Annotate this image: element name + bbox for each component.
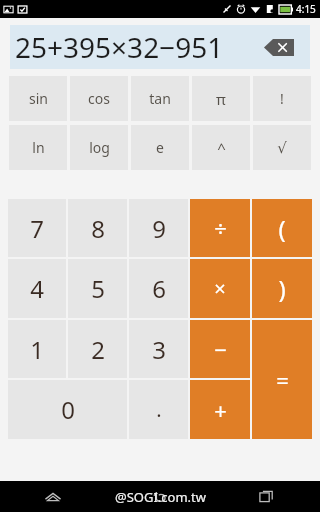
button[interactable]: ln — [9, 125, 67, 170]
staticText: sin — [29, 89, 48, 108]
staticText: 1 — [30, 333, 44, 366]
button[interactable]: 9 — [129, 199, 188, 257]
button[interactable]: = — [252, 320, 312, 439]
staticText: √ — [277, 139, 287, 156]
staticText: ! — [280, 89, 284, 108]
staticText: 3 — [152, 333, 166, 366]
button[interactable]: × — [190, 259, 250, 318]
button[interactable]: Home — [0, 481, 106, 512]
staticText: 5 — [91, 272, 105, 305]
button[interactable]: log — [70, 125, 128, 170]
button[interactable]: Backspace — [264, 39, 294, 56]
staticText: 9 — [152, 212, 166, 245]
staticText: ^ — [217, 138, 226, 158]
button[interactable]: Recents — [213, 481, 320, 512]
staticText: ) — [278, 272, 286, 305]
staticText: . — [156, 396, 162, 423]
staticText: − — [214, 334, 227, 364]
staticText: 6 — [152, 272, 166, 305]
button[interactable]: ! — [253, 76, 311, 121]
button[interactable]: 6 — [129, 259, 188, 318]
button[interactable]: 25+395×32−951 — [10, 25, 310, 69]
button[interactable]: ^ — [192, 125, 250, 170]
button[interactable]: sin — [9, 76, 67, 121]
button[interactable]: 7 — [8, 199, 66, 257]
button[interactable]: 8 — [68, 199, 127, 257]
staticText: cos — [88, 89, 110, 108]
staticText: + — [214, 395, 227, 425]
staticText: 4 — [30, 272, 44, 305]
button[interactable]: 4 — [8, 259, 66, 318]
staticText: 0 — [61, 393, 75, 426]
button[interactable]: ÷ — [190, 199, 250, 257]
staticText: = — [276, 365, 289, 395]
button[interactable]: 3 — [129, 320, 188, 378]
button[interactable]: ( — [252, 199, 312, 257]
button[interactable]: cos — [70, 76, 128, 121]
staticText: ÷ — [214, 213, 227, 243]
button[interactable]: 2 — [68, 320, 127, 378]
staticText: tan — [149, 89, 171, 108]
staticText: ( — [278, 212, 286, 245]
staticText: @SOGI.com.tw — [115, 488, 206, 506]
staticText: × — [214, 275, 226, 302]
button[interactable]: tan — [131, 76, 189, 121]
button[interactable]: e — [131, 125, 189, 170]
staticText: ln — [32, 138, 45, 157]
staticText: 4:15 — [296, 2, 316, 16]
staticText: 2 — [91, 333, 105, 366]
staticText: log — [89, 138, 110, 157]
button[interactable]: 0 — [8, 380, 127, 439]
button[interactable]: 1 — [8, 320, 66, 378]
button[interactable]: ) — [252, 259, 312, 318]
staticText: π — [216, 89, 226, 109]
button[interactable]: π — [192, 76, 250, 121]
button[interactable]: 5 — [68, 259, 127, 318]
staticText: 25+395×32−951 — [15, 28, 224, 66]
button[interactable]: + — [190, 380, 250, 439]
button[interactable]: − — [190, 320, 250, 378]
button[interactable]: . — [129, 380, 188, 439]
button[interactable]: √ — [253, 125, 311, 170]
staticText: e — [156, 138, 164, 157]
staticText: 7 — [30, 212, 44, 245]
button[interactable]: Back — [106, 481, 213, 512]
staticText: 8 — [91, 212, 105, 245]
